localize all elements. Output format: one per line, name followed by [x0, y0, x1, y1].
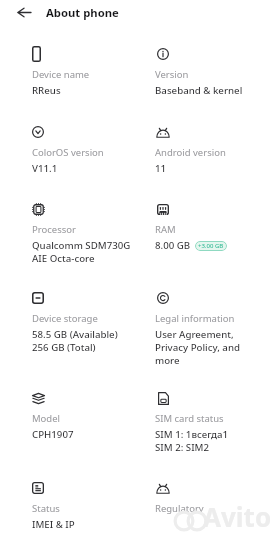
button[interactable]: Status — [32, 480, 142, 533]
staticText: RAM — [155, 223, 176, 236]
staticText: RReus — [32, 84, 61, 97]
staticText: 8.00 GB — [155, 239, 191, 252]
staticText: About phone — [46, 5, 119, 20]
staticText: IMEI & IP — [32, 518, 75, 531]
staticText: Privacy Policy, and — [155, 341, 240, 354]
button[interactable]: Android version — [155, 124, 265, 177]
button[interactable]: Processor — [32, 201, 142, 267]
staticText: Status — [32, 502, 60, 515]
staticText: Model — [32, 412, 61, 425]
button[interactable]: ColorOS version — [32, 124, 142, 177]
staticText: 256 GB (Total) — [32, 341, 96, 354]
button[interactable]: SIM card status — [155, 390, 265, 456]
staticText: Baseband & kernel — [155, 84, 243, 97]
staticText: Device storage — [32, 312, 98, 325]
button[interactable]: RAM — [155, 201, 265, 254]
staticText: 11 — [155, 162, 167, 175]
staticText: Version — [155, 68, 189, 81]
button[interactable]: Back — [13, 2, 34, 23]
staticText: AIE Octa-core — [32, 252, 95, 265]
staticText: User Agreement, — [155, 328, 234, 341]
button[interactable]: Version — [155, 46, 265, 99]
staticText: Legal information — [155, 312, 235, 325]
staticText: SIM card status — [155, 412, 224, 425]
button[interactable]: Device storage — [32, 290, 142, 356]
staticText: Processor — [32, 223, 76, 236]
staticText: Avito — [203, 499, 272, 534]
staticText: V11.1 — [32, 162, 58, 175]
staticText: 58.5 GB (Available) — [32, 328, 118, 341]
staticText: Device name — [32, 68, 90, 81]
staticText: Android version — [155, 146, 226, 159]
staticText: +3.00 GB — [198, 242, 224, 250]
button[interactable]: Legal information — [155, 290, 265, 369]
staticText: more — [155, 354, 180, 367]
button[interactable]: Device name — [32, 46, 142, 99]
staticText: Qualcomm SDM730G — [32, 239, 131, 252]
button[interactable]: Regulatory — [155, 480, 265, 533]
staticText: CPH1907 — [32, 428, 74, 441]
button[interactable]: Model — [32, 390, 142, 443]
staticText: ColorOS version — [32, 146, 104, 159]
staticText: Regulatory — [155, 502, 204, 515]
staticText: SIM 1: 1всегда1 — [155, 428, 229, 441]
staticText: SIM 2: SIM2 — [155, 441, 210, 454]
